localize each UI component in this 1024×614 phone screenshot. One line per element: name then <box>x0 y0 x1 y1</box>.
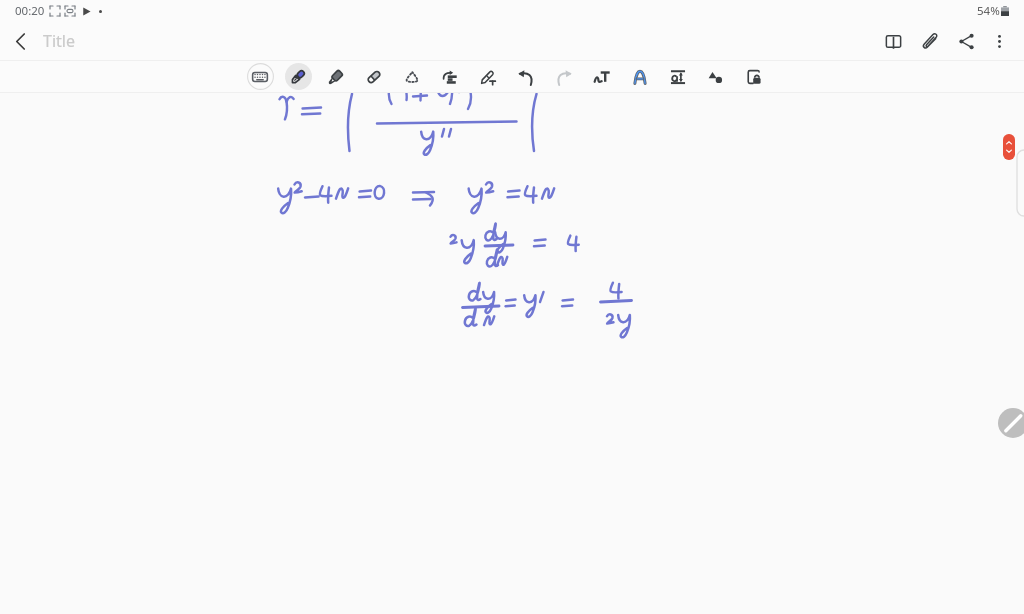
button[interactable]: Scroll up or down <box>1003 134 1015 160</box>
button[interactable]: Share <box>948 22 984 60</box>
button[interactable]: Lasso select <box>393 60 431 93</box>
button[interactable]: Pen <box>279 60 317 93</box>
button[interactable]: Eraser <box>355 60 393 93</box>
button[interactable]: Shapes <box>697 60 735 93</box>
button[interactable]: Highlighter <box>317 60 355 93</box>
button[interactable]: Back <box>0 22 43 60</box>
button[interactable]: Attach file <box>912 22 948 60</box>
button[interactable]: Convert to text <box>469 60 507 93</box>
button[interactable]: Undo <box>507 60 545 93</box>
button[interactable]: Lock page <box>735 60 773 93</box>
button[interactable]: Text size <box>659 60 697 93</box>
button[interactable]: Insert space <box>431 60 469 93</box>
staticText: Title <box>43 30 75 52</box>
button[interactable]: Redo <box>545 60 583 93</box>
button[interactable]: More options <box>984 22 1015 60</box>
button[interactable]: Reading view <box>875 22 912 60</box>
button[interactable]: Keyboard <box>241 60 279 93</box>
button[interactable]: Pen tool <box>998 408 1024 438</box>
button[interactable]: Handwriting to text <box>583 60 621 93</box>
button[interactable]: Spell check <box>621 60 659 93</box>
staticText: 00:20 <box>15 3 45 19</box>
staticText: 54% <box>977 3 1000 19</box>
